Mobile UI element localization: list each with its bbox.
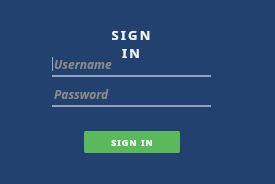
button[interactable]: Username	[52, 55, 211, 77]
staticText: Password	[54, 86, 109, 102]
staticText: Username	[54, 56, 112, 72]
staticText: SIGN IN	[101, 26, 163, 62]
button[interactable]: SIGN IN	[84, 131, 180, 153]
button[interactable]: Password	[52, 85, 211, 107]
staticText: SIGN IN	[111, 136, 154, 148]
